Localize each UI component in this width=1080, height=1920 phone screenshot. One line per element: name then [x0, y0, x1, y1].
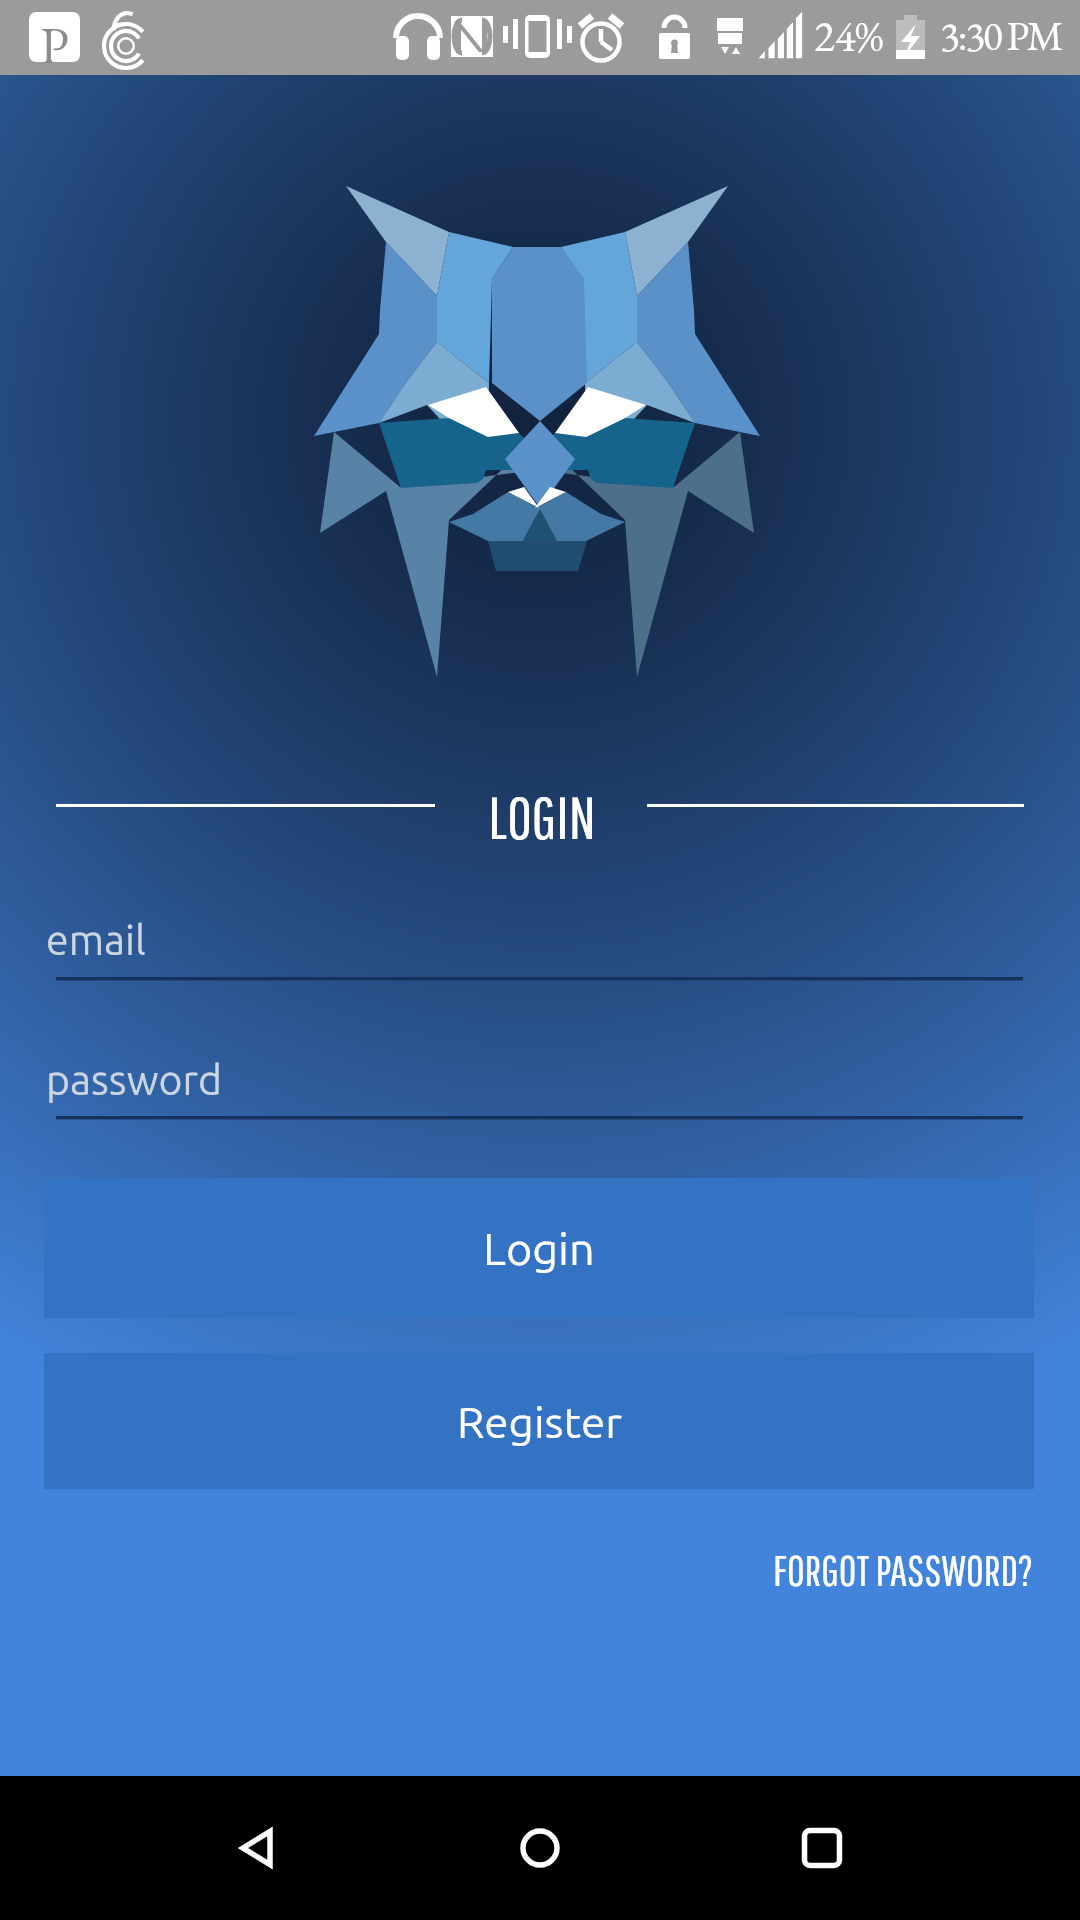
- button[interactable]: Register: [44, 1353, 1034, 1489]
- button[interactable]: Recent apps: [764, 1790, 880, 1906]
- staticText: Register: [457, 1397, 622, 1446]
- staticText: 24%: [814, 8, 884, 64]
- button[interactable]: Back: [200, 1790, 316, 1906]
- button[interactable]: FORGOT PASSWORD?: [634, 1540, 1034, 1600]
- staticText: 3:30 PM: [940, 9, 1062, 63]
- staticText: LOGIN: [488, 782, 596, 851]
- staticText: Login: [483, 1223, 595, 1273]
- button[interactable]: password: [46, 1045, 1030, 1115]
- staticText: FORGOT PASSWORD?: [773, 1545, 1034, 1595]
- button[interactable]: email: [46, 905, 1030, 975]
- staticText: P: [40, 12, 69, 63]
- staticText: password: [46, 1057, 222, 1103]
- button[interactable]: Login: [44, 1178, 1034, 1318]
- staticText: email: [46, 917, 146, 963]
- button[interactable]: Home: [482, 1790, 598, 1906]
